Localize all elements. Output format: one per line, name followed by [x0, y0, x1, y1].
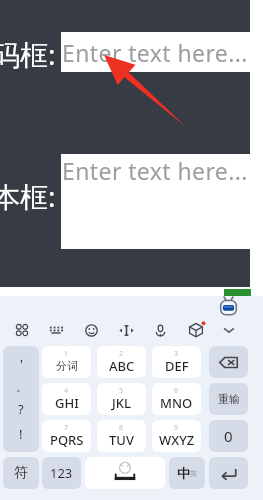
staticText: MNO — [160, 394, 193, 412]
staticText: ABC — [109, 357, 135, 375]
button[interactable]: Emoji — [78, 317, 104, 343]
staticText: PQRS — [50, 431, 84, 449]
button[interactable]: Collapse keyboard — [216, 317, 242, 343]
staticText: 0 — [224, 426, 233, 446]
button[interactable]: PQRS — [42, 420, 91, 452]
staticText: 英 — [190, 469, 197, 478]
button[interactable]: Voice input — [147, 317, 173, 343]
staticText: 符 — [14, 464, 28, 482]
staticText: 密码框: — [0, 35, 56, 73]
button[interactable]: GHI — [42, 383, 91, 415]
staticText: 。 — [16, 380, 27, 394]
staticText: 7 — [64, 423, 69, 433]
button[interactable]: 分词 — [42, 346, 91, 378]
staticText: TUV — [109, 431, 134, 449]
button[interactable]: Enter text here... — [61, 32, 263, 72]
staticText: 重输 — [218, 392, 240, 406]
button[interactable]: Keyboard layouts — [9, 317, 35, 343]
staticText: 4 — [64, 386, 69, 396]
staticText: 6 — [174, 386, 179, 396]
staticText: 9 — [174, 423, 179, 433]
button[interactable]: 0 — [209, 420, 248, 452]
button[interactable]: 重输 — [209, 383, 248, 415]
staticText: 123 — [50, 464, 73, 482]
button[interactable]: Keyboard — [43, 317, 69, 343]
staticText: 中 — [177, 465, 190, 481]
button[interactable]: Enter text here... — [61, 154, 263, 249]
button[interactable]: Text editing — [113, 317, 139, 343]
staticText: Enter text here... — [62, 37, 248, 68]
button[interactable]: JKL — [97, 383, 146, 415]
button[interactable]: TUV — [97, 420, 146, 452]
button[interactable]: Enter — [209, 457, 248, 489]
staticText: ! — [19, 425, 23, 443]
button[interactable]: ABC — [97, 346, 146, 378]
button[interactable]: 中英 — [169, 457, 205, 489]
staticText: 2 — [119, 349, 124, 359]
button[interactable]: Punctuation — [3, 346, 39, 452]
staticText: ' — [20, 355, 23, 373]
staticText: ? — [18, 400, 24, 418]
staticText: JKL — [112, 394, 131, 412]
staticText: Enter text here... — [62, 155, 248, 186]
button[interactable]: WXYZ — [152, 420, 201, 452]
staticText: 5 — [119, 386, 124, 396]
staticText: GHI — [55, 394, 79, 412]
button[interactable]: 符 — [3, 457, 39, 489]
button[interactable]: 123 — [42, 457, 81, 489]
staticText: 文本框: — [0, 177, 56, 215]
button[interactable]: Skins — [183, 317, 209, 343]
button[interactable]: DEF — [152, 346, 201, 378]
staticText: WXYZ — [159, 431, 195, 449]
button[interactable]: MNO — [152, 383, 201, 415]
staticText: 8 — [119, 423, 124, 433]
staticText: 分词 — [56, 359, 78, 373]
button[interactable]: Backspace — [209, 346, 248, 378]
staticText: 1 — [64, 349, 69, 359]
button[interactable]: AI assistant — [220, 297, 237, 316]
staticText: DEF — [165, 357, 189, 375]
button[interactable]: Space — [85, 457, 165, 489]
staticText: 3 — [174, 349, 179, 359]
